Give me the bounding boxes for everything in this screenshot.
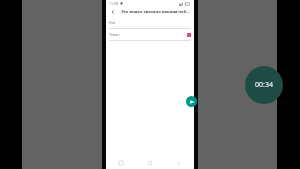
- staticText: Кто: [109, 20, 191, 25]
- button[interactable]: Recents: [114, 157, 128, 169]
- button[interactable]: Home: [143, 157, 157, 169]
- staticText: Тема •: [109, 32, 187, 37]
- button[interactable]: Тема •: [106, 29, 194, 40]
- button[interactable]: Send: [186, 96, 197, 107]
- staticText: Это видео связано вашим поб...: [121, 9, 191, 15]
- staticText: 11:58: [109, 1, 118, 6]
- button[interactable]: Recording timer: [245, 66, 283, 104]
- button[interactable]: Кто: [106, 17, 194, 28]
- button[interactable]: Back: [109, 8, 117, 16]
- staticText: 00:34: [255, 80, 273, 90]
- button[interactable]: Back: [172, 157, 186, 169]
